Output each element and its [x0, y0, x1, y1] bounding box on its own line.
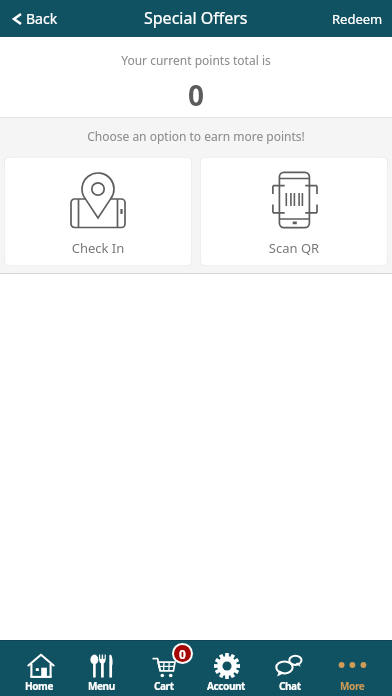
staticText: Menu [88, 679, 115, 693]
button[interactable]: Home [8, 641, 70, 696]
staticText: Cart [154, 679, 174, 693]
button[interactable]: Menu [70, 641, 132, 696]
staticText: Home [25, 679, 54, 693]
button[interactable]: Check In [4, 157, 192, 266]
staticText: Choose an option to earn more points! [0, 128, 392, 144]
staticText: Special Offers [144, 7, 248, 29]
staticText: Redeem [332, 10, 383, 28]
staticText: Back [26, 9, 58, 28]
button[interactable]: 0 [132, 641, 195, 696]
staticText: 0 [0, 76, 392, 114]
staticText: Account [207, 679, 246, 693]
button[interactable]: Chat [258, 641, 321, 696]
staticText: More [340, 679, 365, 693]
staticText: Your current points total is [0, 52, 392, 68]
staticText: Check In [4, 239, 192, 257]
staticText: 0 [179, 646, 186, 662]
button[interactable]: Back [0, 3, 72, 34]
button[interactable]: Account [195, 641, 258, 696]
staticText: Chat [279, 679, 301, 693]
staticText: Scan QR [200, 239, 388, 257]
button[interactable]: Scan QR [200, 157, 388, 266]
button[interactable]: Redeem [322, 2, 392, 36]
button[interactable]: More [321, 641, 384, 696]
